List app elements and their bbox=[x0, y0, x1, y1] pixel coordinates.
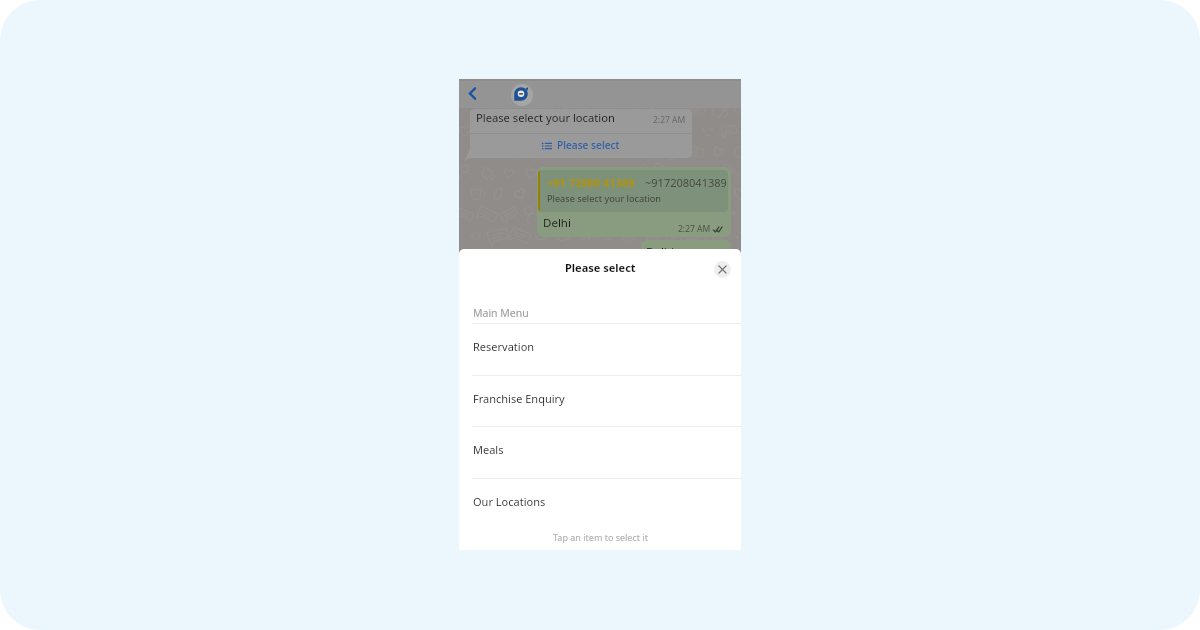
staticText: Main Menu bbox=[473, 306, 529, 320]
staticText: Please select bbox=[557, 138, 620, 152]
staticText: Please select your location bbox=[476, 110, 615, 125]
staticText: 2:27 AM bbox=[678, 223, 711, 235]
button[interactable]: Franchise Enquiry bbox=[459, 375, 741, 427]
staticText: Reservation bbox=[473, 339, 535, 354]
staticText: Please select bbox=[565, 260, 636, 275]
button[interactable]: Please select bbox=[470, 134, 692, 158]
button[interactable]: Meals bbox=[459, 426, 741, 478]
staticText: Delhi bbox=[646, 244, 674, 260]
staticText: Delhi bbox=[543, 215, 571, 231]
button[interactable]: Dismiss bbox=[459, 79, 741, 550]
staticText: Please select your location bbox=[547, 192, 662, 205]
staticText: 2:27 AM bbox=[653, 114, 686, 126]
staticText: Meals bbox=[473, 442, 504, 457]
staticText: ~917208041389 bbox=[645, 175, 726, 190]
staticText: Tap an item to select it bbox=[553, 531, 648, 543]
staticText: Franchise Enquiry bbox=[473, 391, 565, 406]
button[interactable]: Profile bbox=[511, 84, 533, 106]
staticText: +91 72080 41389 bbox=[547, 175, 635, 190]
button[interactable]: Our Locations bbox=[459, 478, 741, 530]
staticText: Our Locations bbox=[473, 494, 546, 509]
button[interactable]: Back bbox=[459, 81, 485, 108]
button[interactable]: Close bbox=[714, 261, 731, 278]
button[interactable]: Reservation bbox=[459, 323, 741, 375]
